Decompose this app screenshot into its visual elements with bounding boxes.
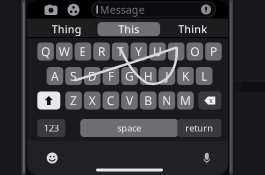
button[interactable]: Shift [37,91,60,109]
button[interactable]: E [75,42,91,60]
staticText: S [70,68,77,84]
button[interactable]: A [47,67,63,85]
button[interactable]: Think [161,22,224,36]
staticText: N [162,92,171,108]
staticText: A [51,68,59,84]
button[interactable]: Message field [91,2,215,17]
staticText: X [89,92,96,108]
staticText: M [180,92,191,108]
button[interactable]: S [65,67,82,85]
button[interactable]: H [140,67,156,85]
staticText: O [190,43,199,59]
staticText: T [117,43,124,59]
staticText: space [117,122,141,134]
button[interactable]: N [158,91,175,109]
button[interactable]: R [93,42,110,60]
button[interactable]: V [121,91,138,109]
staticText: G [125,68,134,84]
button[interactable]: Apps [67,4,79,16]
staticText: D [88,68,97,84]
button[interactable]: Thing [35,22,98,36]
button[interactable]: Take photo [44,4,57,15]
button[interactable]: B [140,91,156,109]
button[interactable]: K [177,67,194,85]
staticText: L [201,68,207,84]
staticText: Q [41,43,50,59]
staticText: Z [70,92,77,108]
button[interactable]: This [98,22,160,36]
staticText: U [153,43,162,59]
button[interactable]: Dictate [203,152,210,163]
staticText: I [174,43,178,59]
button[interactable]: D [84,67,100,85]
staticText: R [98,43,105,59]
button[interactable]: J [158,67,175,85]
button[interactable]: Emoji [47,152,58,163]
button[interactable]: G [121,67,138,85]
staticText: x [209,96,213,105]
staticText: 123 [44,122,59,134]
button[interactable]: space [80,119,178,137]
button[interactable]: Delete [198,91,221,109]
button[interactable]: M [177,91,194,109]
button[interactable]: P [205,42,222,60]
button[interactable]: 123 [37,119,65,137]
button[interactable]: X [84,91,100,109]
staticText: B [144,92,152,108]
staticText: Thing [52,22,82,36]
button[interactable]: return [177,119,221,137]
button[interactable]: C [103,91,119,109]
button[interactable]: Z [65,91,82,109]
button[interactable]: O [186,42,203,60]
button[interactable]: U [149,42,166,60]
staticText: Message [100,2,145,17]
staticText: Think [178,22,207,36]
staticText: Y [135,43,142,59]
staticText: C [107,92,115,108]
staticText: This [118,22,139,36]
button[interactable]: F [103,67,119,85]
staticText: P [210,43,217,59]
staticText: return [185,122,213,134]
staticText: K [182,68,189,84]
staticText: H [144,68,153,84]
staticText: V [126,92,133,108]
button[interactable]: L [196,67,212,85]
staticText: E [79,43,86,59]
staticText: W [59,43,70,59]
staticText: F [108,68,114,84]
button[interactable]: Q [37,42,54,60]
staticText: J [165,68,168,84]
button[interactable]: T [112,42,128,60]
button[interactable]: W [56,42,73,60]
button[interactable]: I [168,42,184,60]
button[interactable]: Y [131,42,147,60]
